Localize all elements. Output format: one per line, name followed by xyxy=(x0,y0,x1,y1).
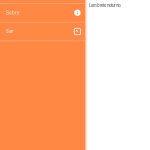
staticText: Lembrete noturno: xyxy=(89,3,121,8)
staticText: Sair xyxy=(6,29,14,34)
button[interactable]: Sobre xyxy=(0,4,85,22)
button[interactable]: Sair xyxy=(0,22,85,40)
staticText: Sobre xyxy=(6,10,20,15)
